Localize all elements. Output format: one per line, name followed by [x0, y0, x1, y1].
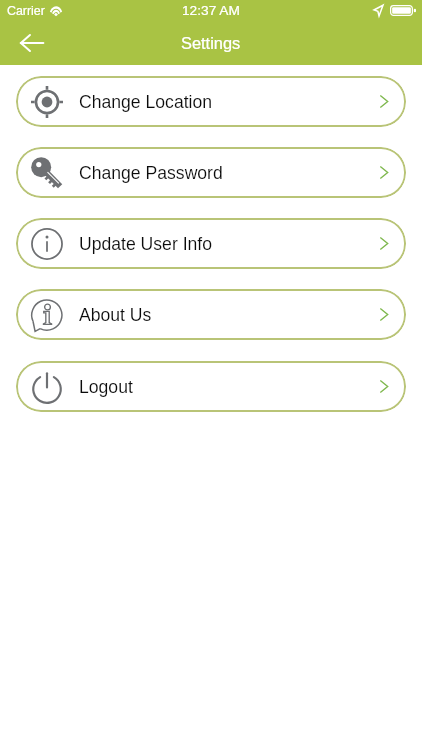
button[interactable]: Change Password	[16, 147, 406, 198]
button[interactable]: About Us	[16, 289, 406, 340]
staticText: About Us	[79, 305, 152, 325]
button[interactable]: Back	[9, 21, 55, 65]
staticText: Logout	[79, 377, 133, 397]
staticText: 12:37 AM	[182, 3, 240, 18]
staticText: Carrier	[7, 4, 45, 18]
button[interactable]: Update User Info	[16, 218, 406, 269]
button[interactable]: Logout	[16, 361, 406, 412]
staticText: Change Password	[79, 163, 223, 183]
staticText: Update User Info	[79, 234, 213, 254]
staticText: Change Location	[79, 92, 213, 112]
staticText: Settings	[181, 34, 241, 52]
button[interactable]: Change Location	[16, 76, 406, 127]
